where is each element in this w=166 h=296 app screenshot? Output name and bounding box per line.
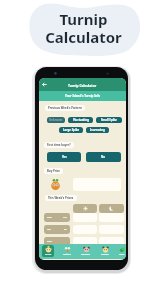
staticText: Increasing: [90, 128, 105, 132]
button[interactable]: More: [116, 245, 126, 257]
button[interactable]: Yes: [47, 152, 81, 162]
staticText: Tue: [47, 228, 51, 231]
button[interactable]: Morning prices: [73, 204, 97, 213]
staticText: Mon: [47, 216, 52, 219]
button[interactable]: Evening prices: [99, 204, 124, 213]
staticText: No: [101, 155, 106, 159]
button[interactable]: Mon morning price: [73, 213, 97, 222]
staticText: Wed: [47, 240, 52, 243]
staticText: More: [119, 253, 125, 256]
button[interactable]: Small Spike: [96, 117, 122, 123]
button[interactable]: Wed evening price: [99, 237, 124, 246]
staticText: Villagers: [81, 253, 91, 256]
button[interactable]: Home: [42, 245, 54, 257]
staticText: Unknown: [49, 118, 63, 122]
staticText: Fluctuating: [73, 118, 89, 122]
button[interactable]: Increasing: [86, 127, 109, 133]
staticText: 122: [63, 216, 67, 219]
staticText: Previous Week's Pattern: [48, 106, 82, 110]
staticText: Turnip Calculator: [45, 9, 122, 48]
button[interactable]: Unknown: [47, 117, 65, 123]
button[interactable]: Tue: [44, 225, 70, 234]
button[interactable]: Villagers: [80, 245, 92, 257]
staticText: Yes: [62, 155, 67, 159]
staticText: Large Spike: [63, 128, 80, 132]
button[interactable]: No: [86, 152, 121, 162]
staticText: Small Spike: [101, 118, 117, 122]
staticText: Buy Price: [47, 169, 60, 173]
button[interactable]: Fluctuating: [68, 117, 93, 123]
button[interactable]: Tue morning price: [73, 225, 97, 234]
button[interactable]: Tue evening price: [99, 225, 124, 234]
button[interactable]: Mon: [44, 213, 70, 222]
button[interactable]: Critters: [61, 245, 73, 257]
button[interactable]: Back: [42, 82, 47, 87]
button[interactable]: Wed: [44, 237, 70, 246]
staticText: 95: [64, 228, 67, 231]
staticText: This Week's Prices: [48, 196, 74, 200]
button[interactable]: Turnips: [99, 245, 111, 257]
button[interactable]: Large Spike: [59, 127, 83, 133]
button[interactable]: Wed morning price: [73, 237, 97, 246]
staticText: Turnips: [101, 253, 109, 256]
staticText: Turnip Calculator: [68, 83, 97, 87]
staticText: First time buyer?: [47, 143, 71, 147]
staticText: Critters: [63, 253, 71, 256]
button[interactable]: Mon evening price: [99, 213, 124, 222]
staticText: Home: [45, 253, 52, 256]
staticText: Your Island's Turnip Info: [65, 94, 101, 98]
